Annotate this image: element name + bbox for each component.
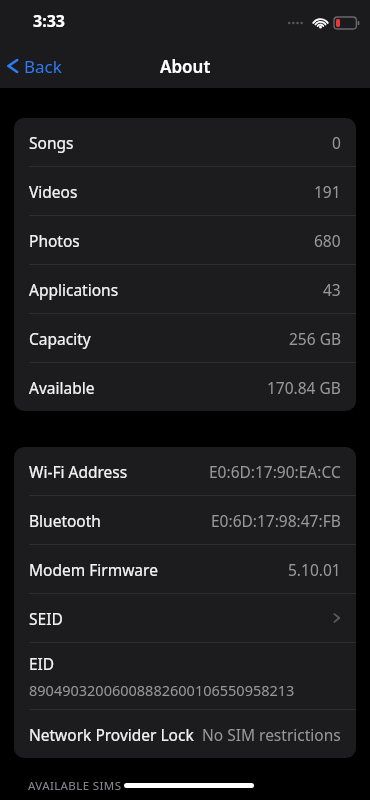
button[interactable]: Capacity	[14, 314, 356, 362]
button[interactable]: Applications	[14, 265, 356, 313]
button[interactable]: Network Provider Lock	[14, 710, 356, 758]
staticText: Applications	[29, 279, 119, 300]
staticText: Modem Firmware	[29, 559, 158, 580]
staticText: Network Provider Lock	[29, 724, 194, 745]
staticText: 89049032006008882600106550958213	[29, 680, 295, 700]
button[interactable]: EID	[14, 643, 356, 709]
button[interactable]: Bluetooth	[14, 496, 356, 544]
button[interactable]: Photos	[14, 216, 356, 264]
staticText: AVAILABLE SIMS	[28, 778, 122, 794]
button[interactable]: Videos	[14, 167, 356, 215]
staticText: 43	[323, 279, 341, 300]
button[interactable]: SEID	[14, 594, 356, 642]
staticText: EID	[29, 653, 55, 674]
staticText: 256 GB	[289, 328, 341, 349]
staticText: Photos	[29, 230, 80, 251]
staticText: Available	[29, 377, 95, 398]
button[interactable]: Modem Firmware	[14, 545, 356, 593]
staticText: 170.84 GB	[267, 377, 341, 398]
staticText: No SIM restrictions	[202, 724, 341, 745]
staticText: E0:6D:17:90:EA:CC	[209, 461, 341, 482]
staticText: 5.10.01	[288, 559, 341, 580]
staticText: 191	[314, 181, 341, 202]
button[interactable]: Songs	[14, 118, 356, 166]
staticText: Capacity	[29, 328, 91, 349]
staticText: 680	[314, 230, 341, 251]
staticText: Videos	[29, 181, 78, 202]
staticText: E0:6D:17:98:47:FB	[211, 510, 341, 531]
button[interactable]: Back	[0, 44, 72, 88]
staticText: 0	[332, 132, 341, 153]
staticText: Bluetooth	[29, 510, 101, 531]
staticText: 3:33	[33, 10, 65, 32]
staticText: About	[160, 55, 211, 78]
button[interactable]: Available	[14, 363, 356, 411]
staticText: Back	[24, 55, 62, 78]
button[interactable]: Wi-Fi Address	[14, 447, 356, 495]
staticText: SEID	[29, 608, 63, 629]
staticText: Songs	[29, 132, 74, 153]
staticText: Wi-Fi Address	[29, 461, 128, 482]
